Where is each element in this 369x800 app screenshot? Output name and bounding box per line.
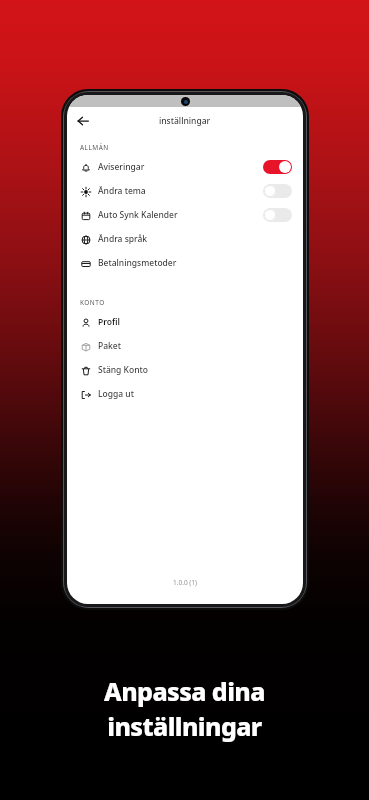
button[interactable]: Ändra tema: [67, 179, 303, 203]
staticText: 1.0.0 (1): [173, 578, 197, 587]
button[interactable]: Back: [73, 111, 93, 131]
staticText: Anpassa dina: [104, 674, 265, 708]
staticText: inställningar: [107, 709, 262, 743]
staticText: Logga ut: [98, 388, 134, 400]
button[interactable]: Auto Synk Kalender: [67, 203, 303, 227]
button[interactable]: Profil: [67, 310, 303, 334]
button[interactable]: Betalningsmetoder: [67, 251, 303, 275]
button[interactable]: Aviseringar: [67, 155, 303, 179]
staticText: Betalningsmetoder: [98, 257, 177, 269]
button[interactable]: Toggle on: [263, 160, 292, 174]
button[interactable]: Logga ut: [67, 382, 303, 406]
staticText: ALLMÄN: [80, 143, 109, 152]
staticText: Paket: [98, 340, 121, 352]
staticText: KONTO: [80, 298, 105, 307]
staticText: Ändra språk: [98, 233, 148, 245]
staticText: Profil: [98, 316, 120, 328]
staticText: inställningar: [159, 115, 211, 127]
staticText: Auto Synk Kalender: [98, 209, 178, 221]
button[interactable]: Ändra språk: [67, 227, 303, 251]
staticText: Stäng Konto: [98, 364, 148, 376]
staticText: Aviseringar: [98, 161, 145, 173]
button[interactable]: Toggle off: [263, 208, 292, 222]
button[interactable]: Paket: [67, 334, 303, 358]
button[interactable]: Stäng Konto: [67, 358, 303, 382]
button[interactable]: Toggle off: [263, 184, 292, 198]
staticText: Ändra tema: [98, 185, 146, 197]
